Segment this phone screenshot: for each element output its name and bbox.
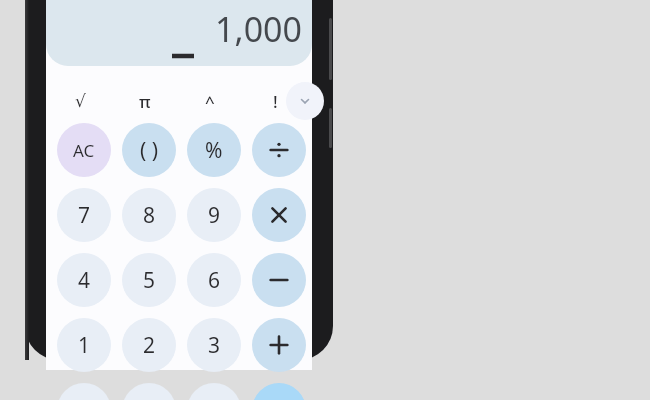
button[interactable]: . xyxy=(122,383,176,400)
staticText: AC xyxy=(73,139,95,162)
staticText: π xyxy=(139,90,151,113)
staticText: 9 xyxy=(208,201,221,230)
staticText: 1 xyxy=(78,331,91,360)
button[interactable]: √ xyxy=(57,78,103,124)
button[interactable]: π xyxy=(122,78,168,124)
button[interactable]: 0 xyxy=(57,383,111,400)
button[interactable]: 1 xyxy=(57,318,111,372)
staticText: 8 xyxy=(143,201,156,230)
staticText: 2 xyxy=(143,331,156,360)
button[interactable]: 7 xyxy=(57,188,111,242)
staticText: % xyxy=(205,136,223,165)
button[interactable]: ! xyxy=(252,78,298,124)
button[interactable]: 2 xyxy=(122,318,176,372)
staticText: ! xyxy=(273,90,278,113)
button[interactable]: 9 xyxy=(187,188,241,242)
button[interactable]: 8 xyxy=(122,188,176,242)
button[interactable]: Backspace xyxy=(187,383,241,400)
staticText: 1,000 xyxy=(46,6,302,50)
staticText: √ xyxy=(75,91,86,111)
button[interactable]: 3 xyxy=(187,318,241,372)
staticText: 4 xyxy=(78,266,91,295)
button[interactable]: Equals xyxy=(252,383,306,400)
button[interactable]: Divide xyxy=(252,123,306,177)
staticText: 7 xyxy=(78,201,91,230)
button[interactable]: AC xyxy=(57,123,111,177)
button[interactable]: 5 xyxy=(122,253,176,307)
button[interactable]: % xyxy=(187,123,241,177)
staticText: 6 xyxy=(208,266,221,295)
button[interactable]: Subtract xyxy=(252,253,306,307)
staticText: 3 xyxy=(208,331,221,360)
staticText: 5 xyxy=(143,266,156,295)
button[interactable]: ( ) xyxy=(122,123,176,177)
button[interactable]: Show more functions xyxy=(286,82,324,120)
staticText: ( ) xyxy=(140,136,159,165)
button[interactable]: 4 xyxy=(57,253,111,307)
button[interactable]: Add xyxy=(252,318,306,372)
staticText: ^ xyxy=(205,90,215,113)
button[interactable]: ^ xyxy=(187,78,233,124)
button[interactable]: 6 xyxy=(187,253,241,307)
button[interactable]: Multiply xyxy=(252,188,306,242)
